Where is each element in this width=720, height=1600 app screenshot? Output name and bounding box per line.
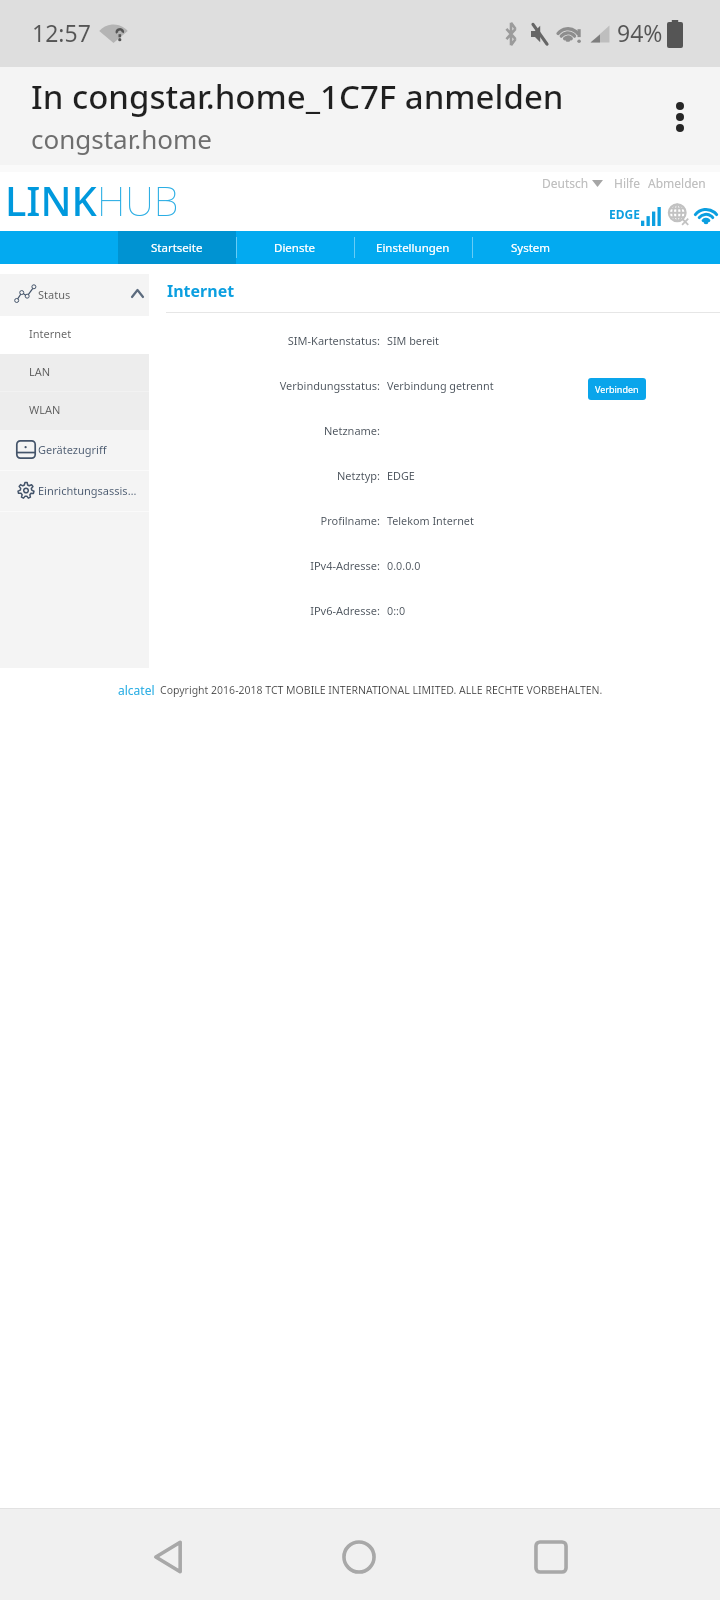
staticText: Verbinden (595, 383, 639, 395)
staticText: Startseite (151, 240, 203, 256)
staticText: Verbindung getrennt (387, 378, 494, 393)
staticText: EDGE (609, 206, 640, 222)
staticText: Gerätezugriff (38, 442, 107, 457)
staticText: SIM-Kartenstatus: (149, 333, 380, 348)
button[interactable]: Startseite (118, 231, 236, 264)
staticText: Copyright 2016-2018 TCT MOBILE INTERNATI… (160, 683, 603, 697)
button[interactable]: More options (652, 88, 708, 144)
button[interactable]: Status (0, 274, 149, 316)
button[interactable]: Gerätezugriff (0, 430, 149, 471)
button[interactable]: Einrichtungsassis… (0, 471, 149, 512)
button[interactable]: Verbinden (588, 378, 646, 400)
staticText: congstar.home (31, 121, 213, 156)
button[interactable]: Home (319, 1517, 399, 1597)
button[interactable]: Dienste (236, 231, 354, 264)
staticText: alcatel (118, 682, 155, 698)
button[interactable]: Abmelden (648, 175, 706, 191)
staticText: 12:57 (32, 17, 91, 48)
staticText: Profilname: (149, 513, 380, 528)
staticText: Einstellungen (376, 240, 450, 256)
staticText: Einrichtungsassis… (38, 483, 137, 498)
staticText: 94% (617, 17, 663, 48)
button[interactable]: Deutsch (542, 175, 589, 191)
button[interactable]: Hilfe (614, 175, 640, 191)
staticText: EDGE (387, 468, 415, 483)
staticText: System (511, 240, 551, 256)
staticText: Netzname: (149, 423, 380, 438)
staticText: 0.0.0.0 (387, 558, 421, 573)
staticText: HUB (97, 173, 179, 227)
staticText: LAN (29, 364, 51, 379)
button[interactable]: Einstellungen (354, 231, 472, 264)
staticText: 0::0 (387, 603, 406, 618)
staticText: Dienste (274, 240, 316, 256)
staticText: Internet (29, 326, 72, 341)
button[interactable]: Internet (0, 316, 149, 354)
staticText: In congstar.home_1C7F anmelden (31, 74, 564, 119)
staticText: IPv6-Adresse: (149, 603, 380, 618)
staticText: WLAN (29, 402, 61, 417)
staticText: Verbindungsstatus: (149, 378, 380, 393)
staticText: Internet (167, 280, 235, 302)
button[interactable]: LAN (0, 354, 149, 392)
staticText: Netztyp: (149, 468, 380, 483)
button[interactable]: Back (128, 1517, 208, 1597)
staticText: SIM bereit (387, 333, 439, 348)
button[interactable]: System (472, 231, 590, 264)
staticText: Status (38, 287, 71, 302)
staticText: IPv4-Adresse: (149, 558, 380, 573)
button[interactable]: Recents (511, 1517, 591, 1597)
staticText: Telekom Internet (387, 513, 474, 528)
staticText: LINK (5, 173, 97, 227)
button[interactable]: WLAN (0, 392, 149, 430)
